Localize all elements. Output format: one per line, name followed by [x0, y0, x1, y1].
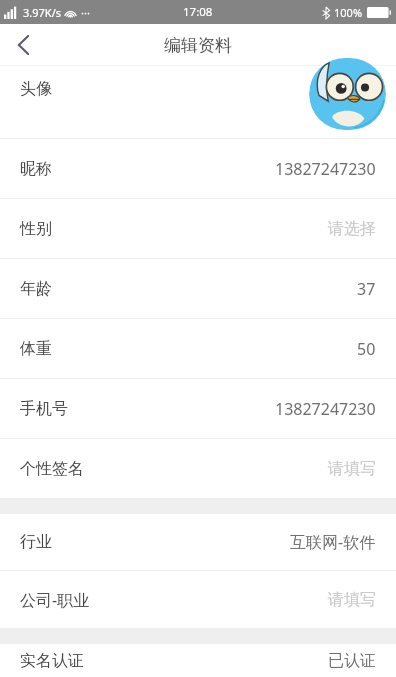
staticText: 实名认证 — [20, 651, 84, 671]
staticText: 行业 — [20, 532, 52, 552]
staticText: 3.97K/s — [23, 5, 61, 20]
button[interactable]: 行业 — [0, 514, 396, 570]
staticText: ··· — [81, 5, 90, 20]
button[interactable]: 体重 — [0, 319, 396, 378]
staticText: 年龄 — [20, 279, 52, 299]
button[interactable]: 昵称 — [0, 139, 396, 198]
staticText: 体重 — [20, 339, 52, 359]
button[interactable]: 年龄 — [0, 259, 396, 318]
button[interactable]: 个性签名 — [0, 439, 396, 498]
button[interactable]: 实名认证 — [0, 644, 396, 677]
button[interactable]: Back — [0, 24, 46, 66]
button[interactable]: 公司-职业 — [0, 571, 396, 628]
staticText: 编辑资料 — [164, 35, 232, 56]
staticText: 请选择 — [328, 219, 376, 239]
button[interactable]: 性别 — [0, 199, 396, 258]
staticText: 已认证 — [328, 651, 376, 671]
staticText: 17:08 — [183, 4, 213, 20]
staticText: 头像 — [20, 79, 52, 99]
staticText: 37 — [357, 278, 376, 300]
staticText: 公司-职业 — [20, 589, 90, 611]
staticText: 性别 — [20, 219, 52, 239]
staticText: 100% — [334, 5, 363, 20]
button[interactable]: 头像 — [0, 66, 396, 138]
staticText: 互联网-软件 — [290, 531, 376, 553]
staticText: 13827247230 — [275, 398, 376, 420]
staticText: 50 — [357, 338, 376, 360]
staticText: 请填写 — [328, 590, 376, 610]
staticText: 个性签名 — [20, 459, 84, 479]
staticText: 请填写 — [328, 459, 376, 479]
staticText: 昵称 — [20, 159, 52, 179]
staticText: 手机号 — [20, 399, 68, 419]
staticText: 13827247230 — [275, 158, 376, 180]
button[interactable]: 手机号 — [0, 379, 396, 438]
